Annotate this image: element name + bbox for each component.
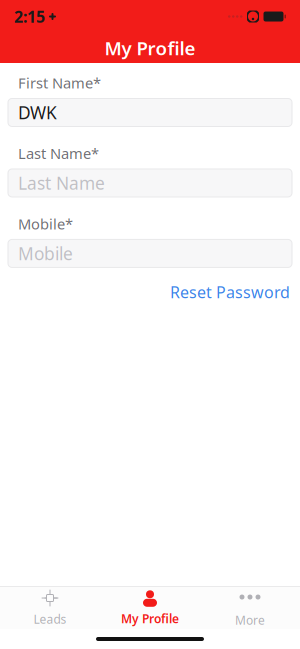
staticText: My Profile — [121, 610, 179, 626]
staticText: Leads — [33, 611, 66, 627]
staticText: 2:15 — [14, 6, 45, 27]
staticText: Mobile — [18, 242, 73, 265]
staticText: DWK — [18, 101, 57, 124]
staticText: More — [235, 612, 265, 628]
button[interactable]: Leads — [0, 587, 100, 629]
button[interactable]: More — [200, 587, 300, 629]
button[interactable]: My Profile — [100, 587, 200, 629]
staticText: Last Name* — [18, 143, 99, 163]
staticText: First Name* — [18, 73, 101, 92]
staticText: Mobile* — [18, 214, 73, 233]
staticText: My Profile — [104, 36, 195, 60]
button[interactable]: Reset Password — [168, 277, 292, 307]
staticText: Reset Password — [170, 281, 290, 303]
staticText: Last Name — [18, 171, 105, 194]
